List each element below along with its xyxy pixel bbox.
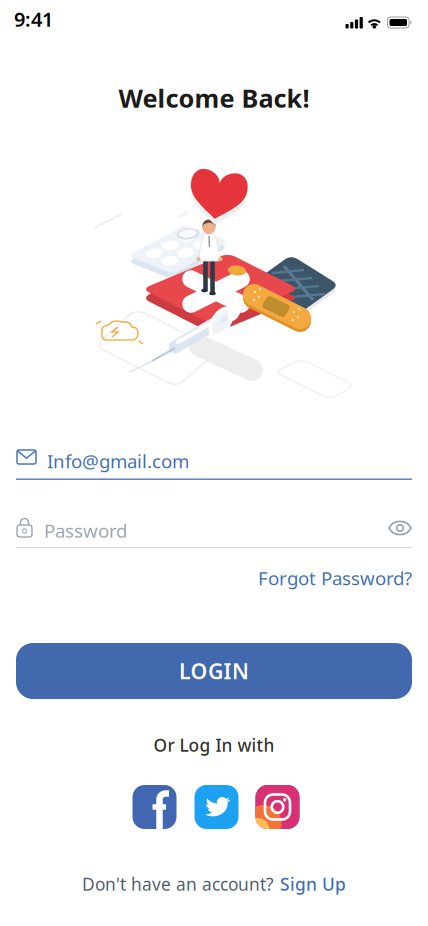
button[interactable]: LOGIN [16,643,412,699]
button[interactable]: Sign Up [280,872,346,895]
staticText: LOGIN [179,657,249,685]
staticText: Info@gmail.com [47,448,189,473]
staticText: Or Log In with [153,733,274,756]
button[interactable]: Log in with Twitter [194,785,238,829]
button[interactable]: Email [16,447,412,480]
staticText: Sign Up [280,872,346,895]
button[interactable]: Log in with Facebook [132,785,176,829]
staticText: Password [44,518,127,543]
button[interactable]: Show password [382,514,418,542]
button[interactable]: Forgot Password? [258,566,412,590]
staticText: Forgot Password? [258,566,412,590]
staticText: 9:41 [14,6,53,32]
staticText: Welcome Back! [118,81,309,115]
staticText: Don't have an account? [82,872,274,895]
button[interactable]: Password [16,517,412,549]
button[interactable]: Log in with Instagram [255,785,299,829]
